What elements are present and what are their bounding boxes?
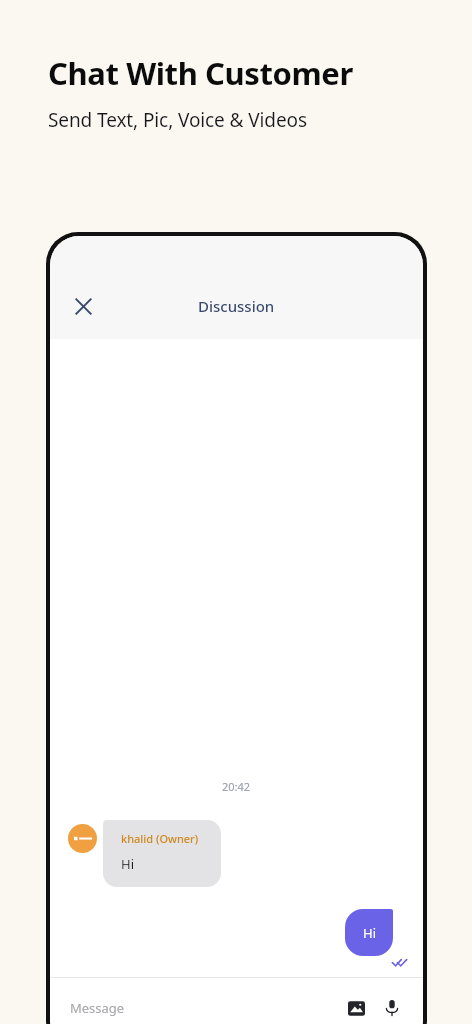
- button[interactable]: khalid (Owner): [68, 820, 423, 887]
- staticText: Chat With Customer: [48, 52, 353, 94]
- staticText: khalid (Owner): [121, 831, 199, 846]
- staticText: Send Text, Pic, Voice & Videos: [48, 107, 307, 133]
- button[interactable]: Hi: [345, 909, 393, 956]
- staticText: Hi: [121, 855, 134, 873]
- button[interactable]: Send picture: [339, 978, 373, 1024]
- button[interactable]: Record voice message: [377, 978, 407, 1024]
- button[interactable]: Close: [62, 285, 104, 327]
- button[interactable]: Message: [70, 978, 339, 1024]
- staticText: Hi: [363, 924, 376, 942]
- staticText: Message: [70, 999, 125, 1017]
- staticText: 20:42: [222, 779, 251, 794]
- staticText: Discussion: [198, 296, 275, 316]
